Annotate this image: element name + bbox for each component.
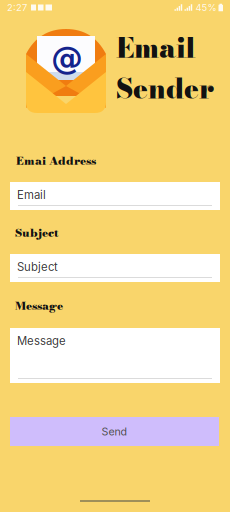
staticText: Email (116, 27, 196, 69)
staticText: 45% (195, 2, 216, 13)
staticText: Send (101, 425, 127, 438)
staticText: Subject (17, 260, 58, 274)
staticText: @ (51, 39, 83, 76)
button[interactable]: Message (10, 328, 220, 383)
staticText: Email (17, 188, 46, 202)
staticText: 2:27 (7, 2, 27, 13)
button[interactable]: Subject (10, 254, 220, 282)
button[interactable]: Email (10, 182, 220, 210)
staticText: Message (17, 334, 66, 348)
staticText: Emai Address (16, 152, 96, 169)
button[interactable]: Send (10, 417, 219, 446)
staticText: Message (15, 297, 63, 314)
staticText: Sender (116, 68, 214, 109)
staticText: Subject (15, 224, 59, 241)
